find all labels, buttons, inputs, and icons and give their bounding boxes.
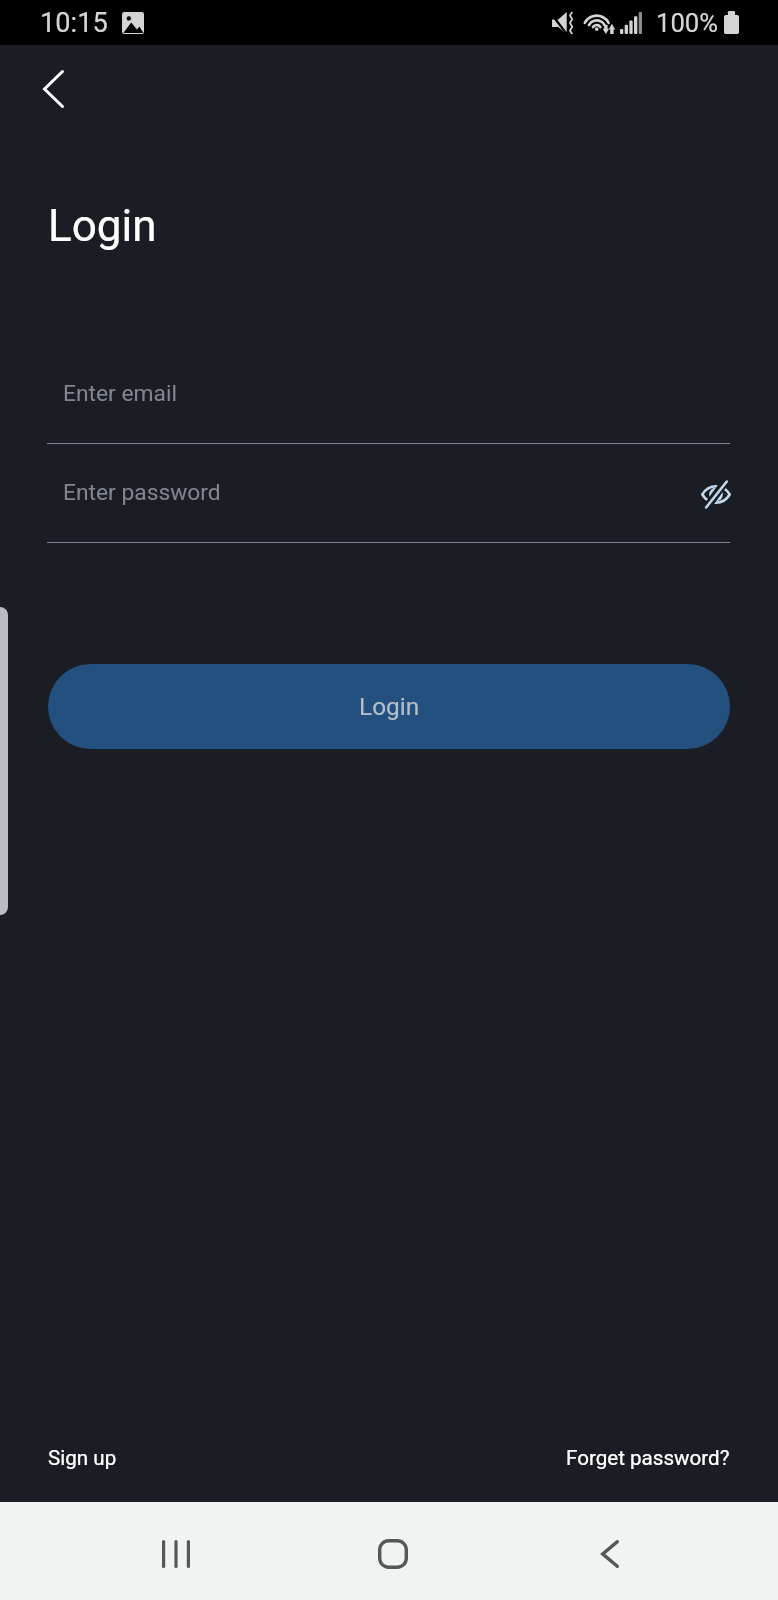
staticText: Login bbox=[359, 692, 420, 721]
button[interactable]: Home bbox=[348, 1509, 437, 1598]
button[interactable]: Back bbox=[26, 59, 80, 119]
button[interactable]: Enter password bbox=[47, 451, 730, 543]
staticText: Login bbox=[48, 200, 157, 252]
button[interactable]: Forget password? bbox=[566, 1446, 730, 1470]
button[interactable]: Show password bbox=[689, 461, 743, 527]
button[interactable]: Enter email bbox=[47, 352, 730, 444]
button[interactable]: Login bbox=[48, 664, 730, 749]
staticText: Enter password bbox=[63, 479, 221, 506]
staticText: 10:15 bbox=[40, 7, 108, 39]
button[interactable]: Recents bbox=[131, 1509, 220, 1598]
button[interactable]: Back bbox=[565, 1509, 654, 1598]
staticText: Enter email bbox=[63, 380, 178, 407]
button[interactable]: Sign up bbox=[48, 1446, 117, 1470]
staticText: 100% bbox=[656, 8, 718, 38]
